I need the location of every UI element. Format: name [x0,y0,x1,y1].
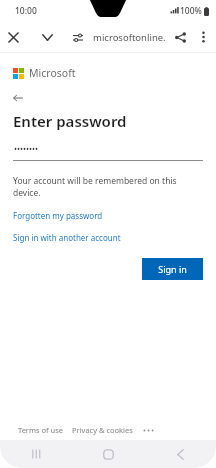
staticText: Enter password [13,111,127,131]
staticText: Terms of use [18,425,64,435]
button[interactable]: Page settings [66,22,90,52]
button[interactable]: Back [13,91,31,105]
button[interactable]: •••••••• [13,143,203,161]
button[interactable]: Back [163,440,197,468]
staticText: 10:00 [15,5,37,17]
staticText: Your account will be remembered on this … [13,175,203,199]
button[interactable]: Privacy & cookies [72,425,133,435]
button[interactable]: microsoftonline.com [93,31,168,44]
staticText: Forgotten my password [13,210,103,221]
button[interactable]: Home [91,440,125,468]
staticText: Sign in with another account [13,232,121,243]
button[interactable]: Sign in [142,258,203,280]
staticText: •••••••• [14,143,39,154]
button[interactable]: Expand [34,22,60,52]
button[interactable]: More options [192,22,214,52]
button[interactable]: Sign in with another account [13,232,121,243]
staticText: Microsoft [29,66,76,80]
staticText: 100% [180,5,202,17]
staticText: Privacy & cookies [72,425,133,435]
button[interactable]: Terms of use [18,425,64,435]
button[interactable]: Share [168,22,192,52]
button[interactable]: Recent apps [19,440,53,468]
button[interactable]: More [141,423,155,437]
staticText: Sign in [158,263,187,275]
button[interactable]: Forgotten my password [13,210,103,221]
button[interactable]: Close [0,22,26,52]
